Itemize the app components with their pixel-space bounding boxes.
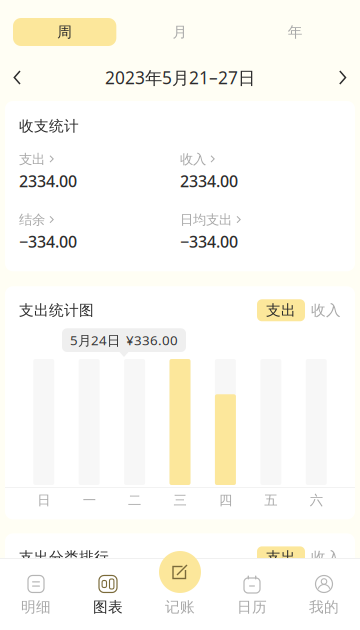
staticText: 二 [128, 492, 141, 508]
staticText: 五 [264, 492, 277, 508]
staticText: 明细 [21, 598, 51, 616]
staticText: 收入 [180, 151, 206, 167]
button[interactable]: 日均支出 [180, 212, 341, 252]
staticText: 四 [219, 492, 232, 508]
button[interactable]: 收入 [311, 299, 341, 321]
button[interactable]: 记账 [144, 558, 216, 630]
staticText: 年 [288, 23, 303, 41]
staticText: 我的 [309, 598, 339, 616]
button[interactable]: 月 [122, 18, 238, 46]
staticText: 2334.00 [19, 170, 77, 192]
staticText: 结余 [19, 212, 45, 228]
staticText: 支出 [266, 301, 296, 319]
button[interactable]: 支出 [257, 299, 305, 321]
staticText: 图表 [93, 598, 123, 616]
staticText: 六 [310, 492, 323, 508]
staticText: −334.00 [19, 231, 77, 252]
staticText: 收入 [311, 548, 341, 566]
staticText: 支出 [266, 548, 296, 566]
button[interactable]: 图表 [72, 558, 144, 630]
staticText: 支出分类排行 [19, 548, 109, 566]
button[interactable]: 日历 [216, 558, 288, 630]
staticText: 支出统计图 [19, 301, 94, 319]
button[interactable]: 收入 [180, 151, 341, 192]
staticText: 收入 [311, 301, 341, 319]
staticText: 一 [83, 492, 96, 508]
staticText: 5月24日 ¥336.00 [70, 331, 178, 349]
button[interactable]: 我的 [288, 558, 360, 630]
staticText: 日历 [237, 598, 267, 616]
staticText: 日 [37, 492, 50, 508]
staticText: −334.00 [180, 231, 238, 252]
button[interactable]: 年 [238, 18, 353, 46]
staticText: 周 [57, 23, 72, 41]
staticText: 月 [172, 23, 187, 41]
button[interactable]: 支出 [19, 151, 180, 192]
button[interactable]: Add record [159, 551, 201, 593]
staticText: 支出 [19, 151, 45, 167]
button[interactable]: 支出 [257, 546, 305, 568]
button[interactable]: 周 [7, 18, 122, 46]
button[interactable]: Next week [320, 61, 360, 94]
staticText: 2023年5月21–27日 [105, 66, 255, 89]
button[interactable]: 收入 [311, 546, 341, 568]
staticText: 记账 [165, 598, 195, 616]
button[interactable]: 明细 [0, 558, 72, 630]
staticText: 三 [173, 492, 186, 508]
staticText: 收支统计 [19, 117, 79, 135]
staticText: 2334.00 [180, 170, 238, 192]
staticText: 日均支出 [180, 212, 232, 228]
button[interactable]: Previous week [0, 61, 39, 94]
button[interactable]: 结余 [19, 212, 180, 252]
